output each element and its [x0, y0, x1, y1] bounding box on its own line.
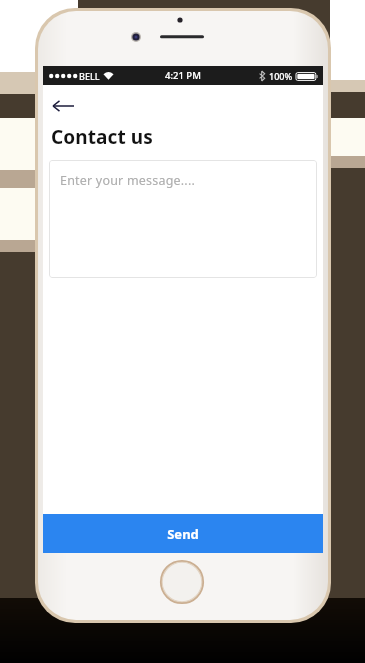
staticText: 100% — [269, 70, 293, 82]
button[interactable]: Send — [43, 514, 323, 553]
staticText: 4:21 PM — [165, 69, 201, 82]
staticText: BELL — [79, 70, 100, 82]
button[interactable]: Enter your message.... — [49, 160, 317, 278]
staticText: Contact us — [51, 124, 153, 150]
button[interactable]: Back — [47, 94, 83, 118]
staticText: Send — [167, 525, 199, 543]
staticText: Enter your message.... — [60, 172, 195, 189]
